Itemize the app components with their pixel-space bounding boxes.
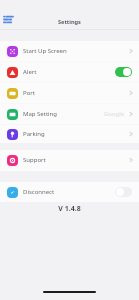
- button[interactable]: Alert on: [115, 67, 132, 77]
- button[interactable]: Port: [0, 83, 139, 103]
- button[interactable]: Start Up Screen: [0, 41, 139, 61]
- button[interactable]: Map Setting: [0, 104, 139, 124]
- staticText: V 1.4.8: [0, 204, 139, 214]
- staticText: Map Setting: [23, 110, 58, 118]
- staticText: Start Up Screen: [23, 47, 67, 55]
- button[interactable]: Support: [0, 150, 139, 170]
- staticText: Alert: [23, 68, 37, 76]
- staticText: Support: [23, 156, 46, 164]
- staticText: Parking: [23, 130, 45, 138]
- button[interactable]: Alert: [0, 62, 139, 82]
- button[interactable]: Menu: [2, 13, 15, 26]
- button[interactable]: Parking: [0, 125, 139, 143]
- button[interactable]: Disconnect: [0, 182, 139, 202]
- button[interactable]: Disconnect off: [115, 187, 132, 197]
- staticText: Disconnect: [23, 188, 55, 196]
- staticText: Port: [23, 89, 35, 97]
- staticText: Settings: [58, 18, 81, 26]
- staticText: Google: [104, 110, 125, 118]
